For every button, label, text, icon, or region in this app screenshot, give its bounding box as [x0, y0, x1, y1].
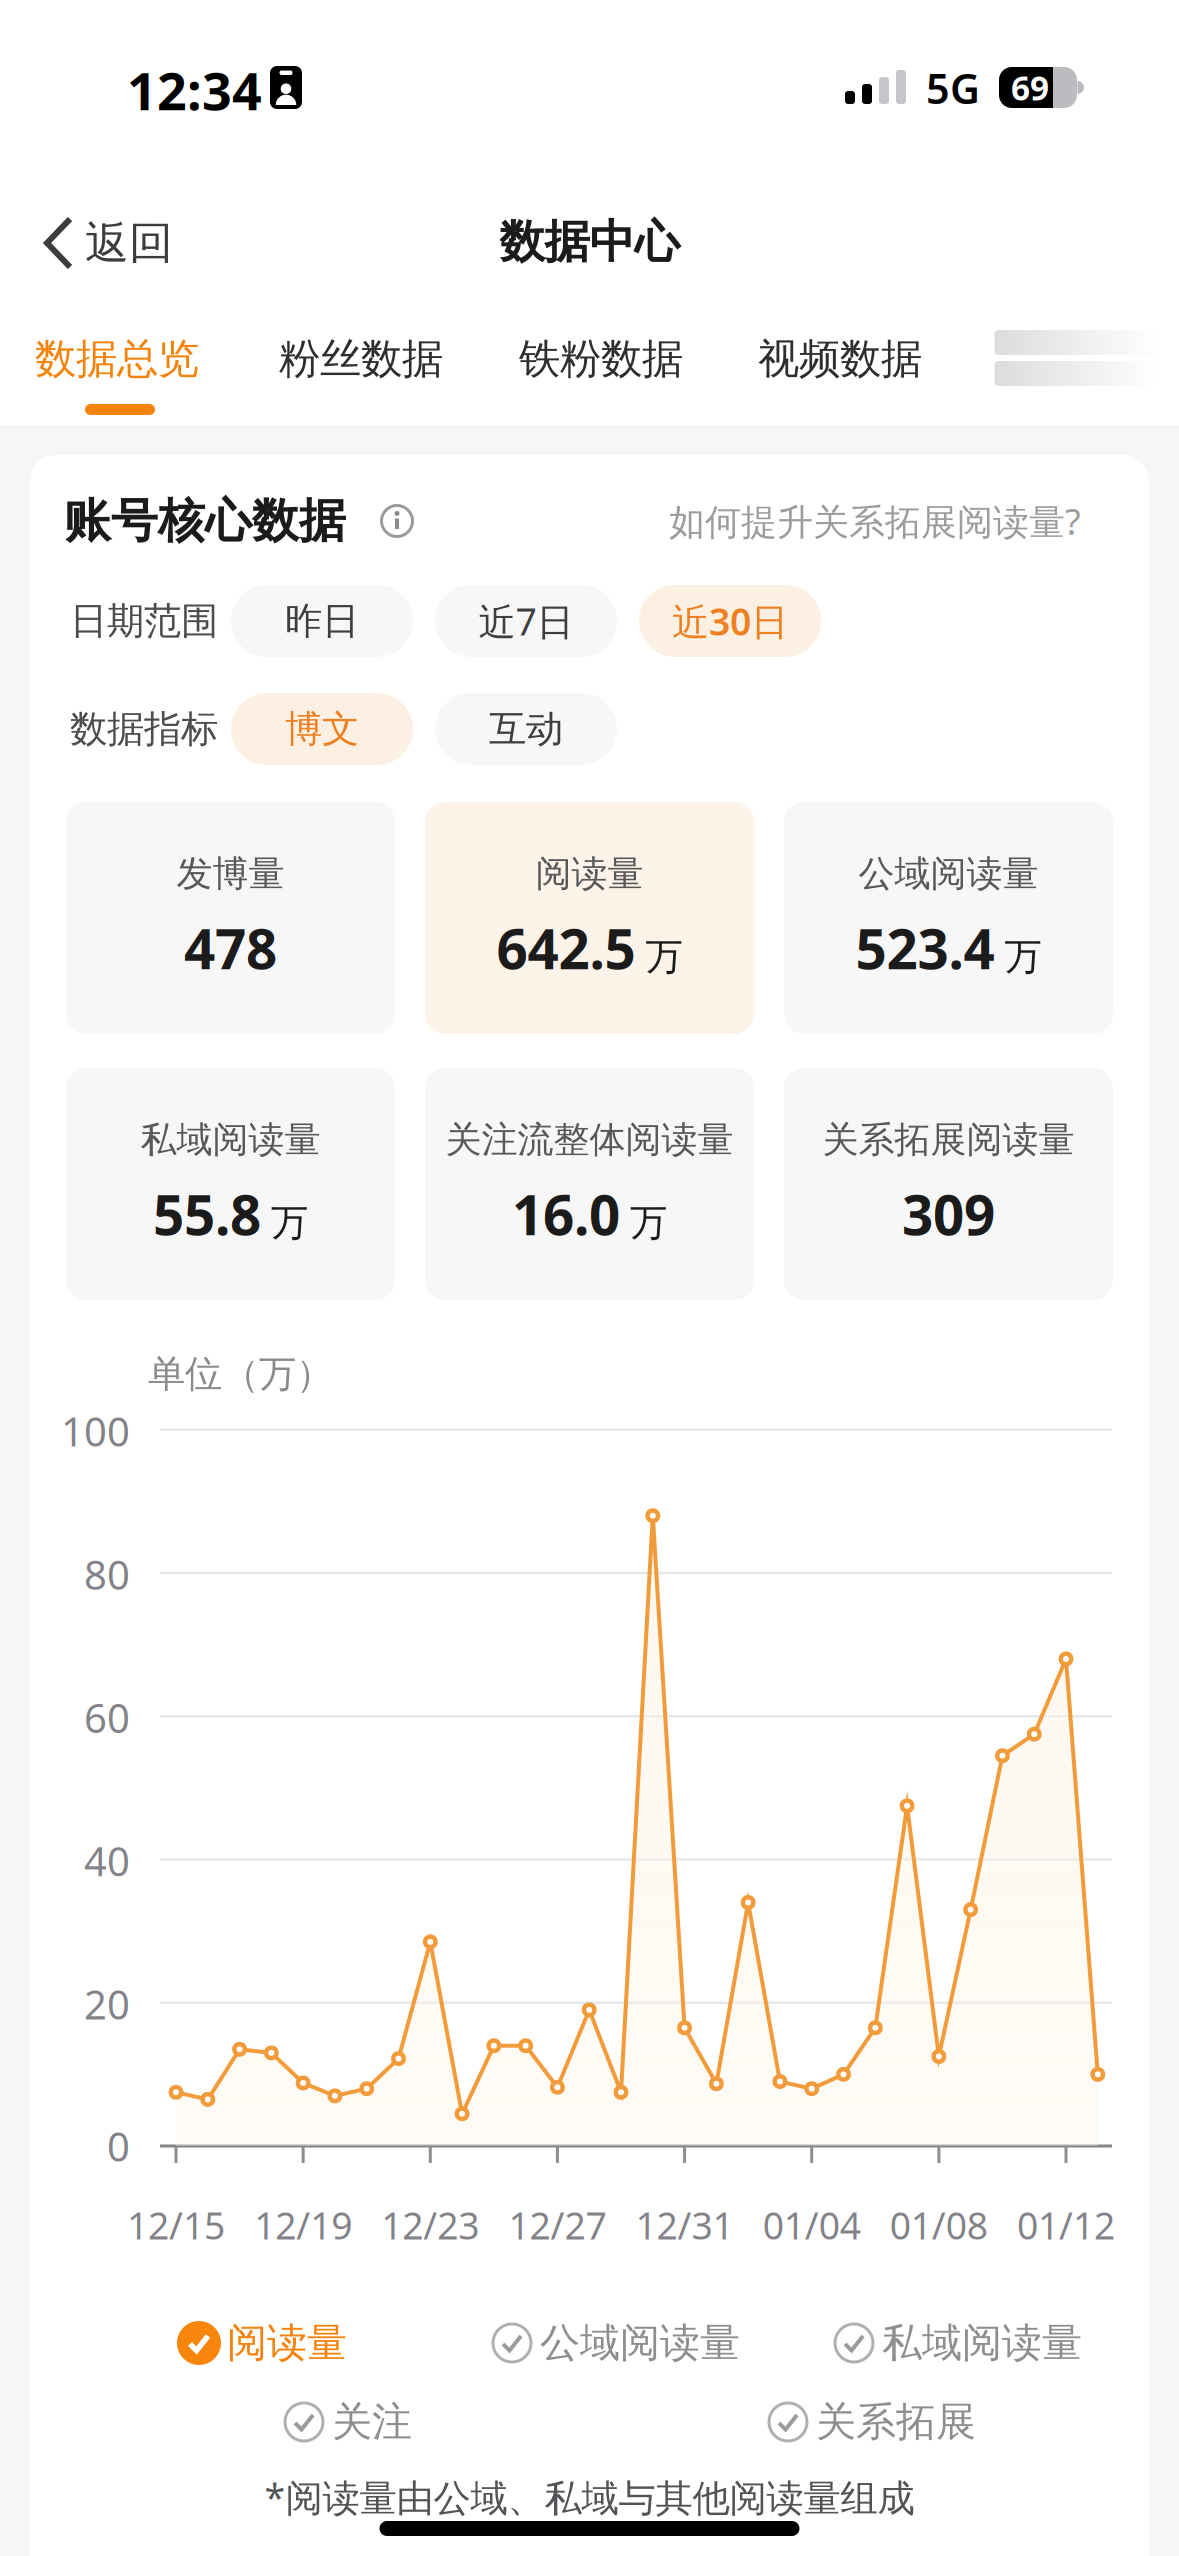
- staticText: 如何提升关系拓展阅读量?: [669, 497, 1081, 545]
- button[interactable]: [994, 330, 1159, 386]
- button[interactable]: 关注流整体阅读量: [425, 1068, 754, 1300]
- staticText: 数据中心: [499, 214, 679, 270]
- staticText: 478: [184, 912, 277, 984]
- staticText: 万: [645, 934, 682, 980]
- staticText: 私域阅读量: [882, 2318, 1082, 2367]
- staticText: 60: [84, 1691, 130, 1744]
- staticText: 返回: [85, 216, 173, 270]
- button[interactable]: 发博量: [66, 802, 395, 1034]
- staticText: 万: [1004, 934, 1041, 980]
- staticText: 40: [84, 1834, 130, 1887]
- staticText: 01/04: [763, 2200, 861, 2250]
- staticText: 单位（万）: [148, 1351, 333, 1397]
- staticText: 12:34: [127, 55, 262, 125]
- staticText: 数据指标: [70, 706, 218, 752]
- button[interactable]: 互动: [435, 693, 617, 765]
- staticText: 互动: [489, 706, 563, 752]
- button[interactable]: 博文: [231, 693, 413, 765]
- staticText: 关注流整体阅读量: [445, 1118, 733, 1162]
- button[interactable]: 关系拓展: [766, 2397, 976, 2446]
- staticText: 69: [1011, 65, 1049, 110]
- button[interactable]: 返回: [43, 216, 173, 270]
- staticText: 阅读量: [535, 852, 643, 896]
- staticText: 523.4: [855, 912, 994, 984]
- staticText: 近30日: [672, 596, 788, 646]
- button[interactable]: 数据总览: [35, 334, 199, 384]
- button[interactable]: 关注: [282, 2397, 412, 2446]
- button[interactable]: 如何提升关系拓展阅读量?: [669, 497, 1081, 545]
- staticText: 12/27: [508, 2200, 606, 2250]
- staticText: 55.8: [153, 1178, 261, 1250]
- staticText: 阅读量: [227, 2318, 347, 2367]
- button[interactable]: 公域阅读量: [490, 2318, 740, 2367]
- staticText: 万: [271, 1200, 308, 1246]
- staticText: 公域阅读量: [858, 852, 1038, 896]
- button[interactable]: 阅读量: [425, 802, 754, 1034]
- staticText: 关注: [332, 2397, 412, 2446]
- button[interactable]: 铁粉数据: [519, 334, 683, 384]
- button[interactable]: 昨日: [231, 585, 413, 657]
- staticText: 80: [84, 1548, 130, 1601]
- button[interactable]: [380, 504, 414, 538]
- staticText: 数据总览: [35, 334, 199, 384]
- staticText: 100: [61, 1404, 130, 1457]
- staticText: *阅读量由公域、私域与其他阅读量组成: [264, 2472, 914, 2522]
- staticText: 发博量: [176, 852, 284, 896]
- staticText: 关系拓展阅读量: [822, 1118, 1074, 1162]
- staticText: 16.0: [512, 1178, 620, 1250]
- staticText: 01/12: [1017, 2200, 1115, 2250]
- staticText: 万: [630, 1200, 667, 1246]
- staticText: 私域阅读量: [140, 1118, 320, 1162]
- staticText: 近7日: [478, 596, 573, 646]
- staticText: 视频数据: [758, 334, 922, 384]
- staticText: 0: [107, 2119, 130, 2172]
- staticText: 309: [902, 1178, 995, 1250]
- staticText: 昨日: [285, 598, 359, 644]
- staticText: 关系拓展: [816, 2397, 976, 2446]
- staticText: 铁粉数据: [519, 334, 683, 384]
- button[interactable]: 近30日: [639, 585, 821, 657]
- staticText: 01/08: [890, 2200, 988, 2250]
- staticText: 12/15: [127, 2200, 225, 2250]
- button[interactable]: 私域阅读量: [832, 2318, 1082, 2367]
- staticText: 账号核心数据: [64, 492, 346, 550]
- staticText: 博文: [285, 706, 359, 752]
- button[interactable]: 私域阅读量: [66, 1068, 395, 1300]
- staticText: 20: [84, 1977, 130, 2030]
- button[interactable]: 粉丝数据: [279, 334, 443, 384]
- staticText: 公域阅读量: [540, 2318, 740, 2367]
- staticText: 粉丝数据: [279, 334, 443, 384]
- staticText: 12/23: [381, 2200, 479, 2250]
- button[interactable]: 近7日: [435, 585, 617, 657]
- staticText: 12/19: [254, 2200, 352, 2250]
- button[interactable]: 公域阅读量: [784, 802, 1113, 1034]
- staticText: 5G: [926, 61, 980, 115]
- button[interactable]: 视频数据: [758, 334, 922, 384]
- staticText: 12/31: [636, 2200, 734, 2250]
- staticText: 日期范围: [70, 598, 218, 644]
- staticText: 642.5: [496, 912, 635, 984]
- button[interactable]: 阅读量: [177, 2318, 347, 2367]
- button[interactable]: 关系拓展阅读量: [784, 1068, 1113, 1300]
